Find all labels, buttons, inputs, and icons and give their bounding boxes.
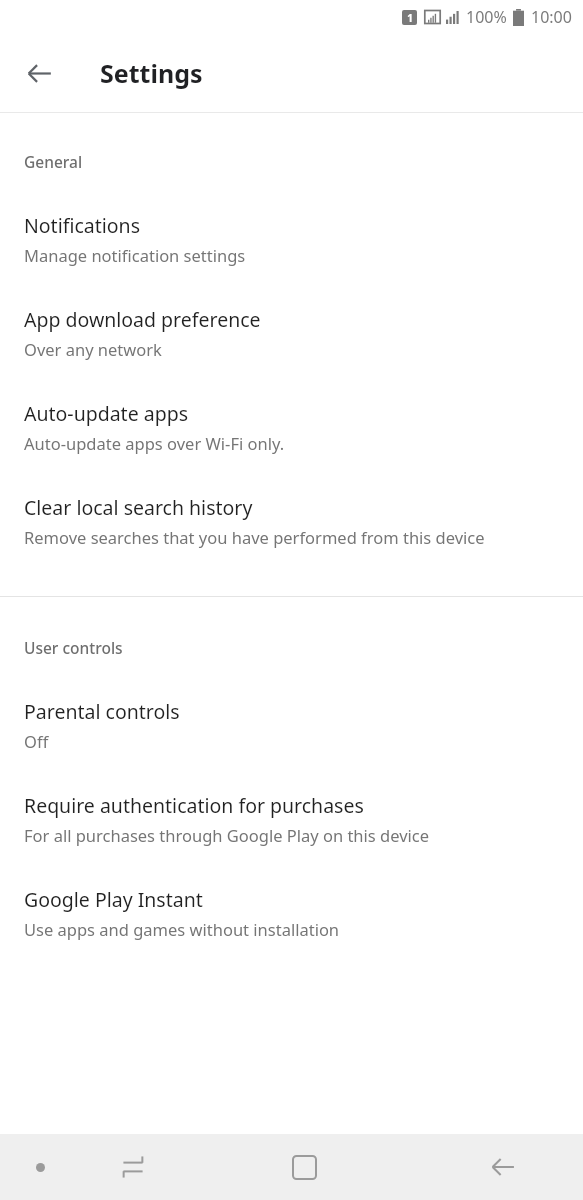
staticText: 1 — [407, 11, 413, 25]
staticText: Settings — [100, 56, 203, 90]
staticText: Over any network — [24, 338, 162, 360]
staticText: Remove searches that you have performed … — [24, 526, 485, 548]
staticText: Google Play Instant — [24, 886, 203, 913]
staticText: 100% — [466, 6, 507, 28]
staticText: General — [24, 151, 583, 172]
staticText: Notifications — [24, 212, 140, 239]
button[interactable]: Notifications — [0, 212, 583, 266]
staticText: User controls — [24, 637, 583, 658]
staticText: App download preference — [24, 306, 261, 333]
staticText: Manage notification settings — [24, 244, 246, 266]
staticText: Clear local search history — [24, 494, 253, 521]
staticText: Off — [24, 730, 49, 752]
staticText: Use apps and games without installation — [24, 918, 340, 940]
button[interactable]: Require authentication for purchases — [0, 792, 583, 846]
button[interactable]: App download preference — [0, 306, 583, 360]
button[interactable]: Recents — [80, 1134, 185, 1200]
staticText: Require authentication for purchases — [24, 792, 364, 819]
button[interactable]: Home — [185, 1134, 423, 1200]
staticText: Auto-update apps — [24, 400, 188, 427]
button[interactable]: Parental controls — [0, 698, 583, 752]
button[interactable]: Clear local search history — [0, 494, 583, 548]
button[interactable]: Back — [423, 1134, 583, 1200]
button[interactable]: Menu — [0, 1134, 80, 1200]
button[interactable]: Google Play Instant — [0, 886, 583, 940]
staticText: Auto-update apps over Wi-Fi only. — [24, 432, 285, 454]
staticText: Parental controls — [24, 698, 180, 725]
button[interactable]: Auto-update apps — [0, 400, 583, 454]
button[interactable]: Back — [14, 48, 64, 98]
staticText: For all purchases through Google Play on… — [24, 824, 430, 846]
staticText: 10:00 — [531, 6, 572, 28]
